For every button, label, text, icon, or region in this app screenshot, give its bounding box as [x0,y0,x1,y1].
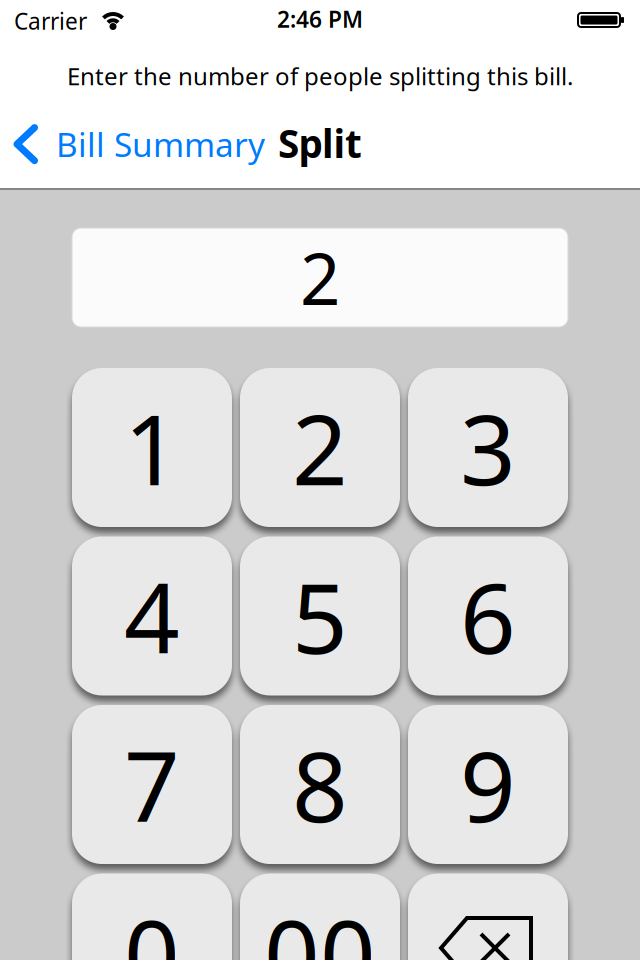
button[interactable]: 2 [240,368,400,527]
button[interactable]: 5 [240,536,400,695]
staticText: 9 [460,720,516,849]
staticText: Bill Summary [56,122,265,166]
staticText: 2 [292,383,348,512]
staticText: 0 [124,888,180,960]
staticText: 2 [300,231,340,324]
button[interactable]: 1 [72,368,232,527]
button[interactable]: 8 [240,705,400,864]
staticText: 8 [292,720,348,849]
staticText: 4 [124,551,180,681]
button[interactable]: 0 [72,873,232,960]
button[interactable]: 7 [72,705,232,864]
button[interactable]: 00 [240,873,400,960]
staticText: Split [278,117,362,169]
button[interactable]: 3 [408,368,568,527]
staticText: 7 [124,720,180,849]
staticText: 2:46 PM [277,4,363,34]
button[interactable]: Bill Summary [13,122,265,166]
button[interactable]: Delete [408,873,568,960]
staticText: Carrier [14,6,87,36]
button[interactable]: 6 [408,536,568,695]
staticText: 6 [460,551,516,681]
button[interactable]: 9 [408,705,568,864]
staticText: 1 [124,383,180,512]
staticText: 3 [460,383,516,512]
staticText: Enter the number of people splitting thi… [67,60,573,92]
staticText: 00 [264,888,376,960]
button[interactable]: 4 [72,536,232,695]
staticText: 5 [292,551,348,681]
